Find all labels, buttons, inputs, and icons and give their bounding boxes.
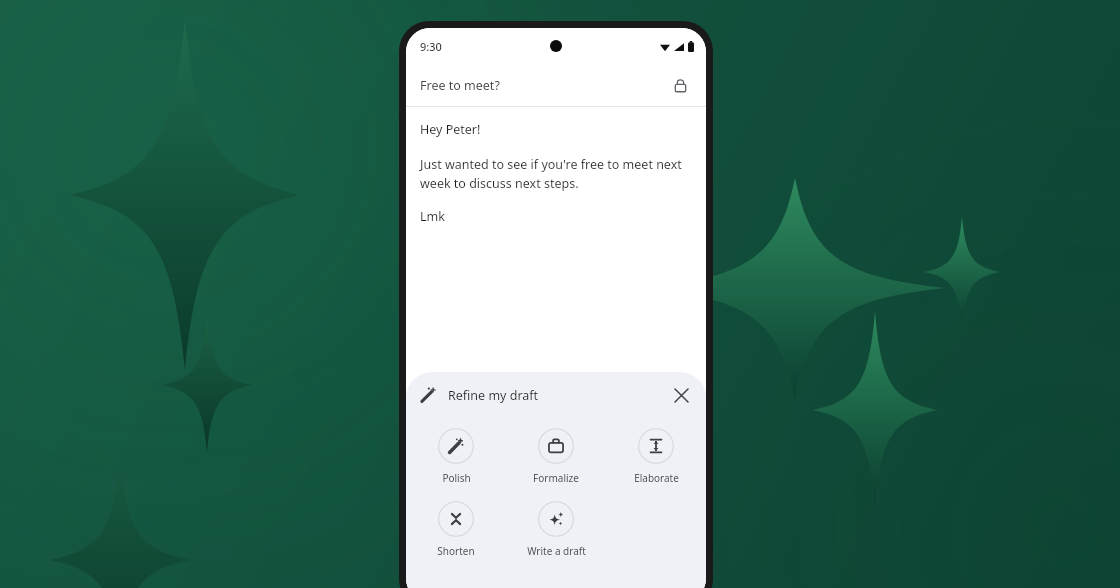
staticText: Shorten <box>437 544 475 558</box>
staticText: Polish <box>442 471 471 485</box>
staticText: Refine my draft <box>448 387 539 404</box>
button[interactable]: Polish <box>406 426 506 487</box>
button[interactable]: Close <box>666 380 696 410</box>
button[interactable]: Write a draft <box>506 499 606 560</box>
button[interactable]: Elaborate <box>606 426 706 487</box>
staticText: Just wanted to see if you're free to mee… <box>420 156 692 192</box>
button[interactable]: Free to meet? <box>406 64 706 106</box>
staticText: 9:30 <box>420 39 442 54</box>
button[interactable]: Shorten <box>406 499 506 560</box>
staticText: Elaborate <box>634 471 679 485</box>
staticText: Free to meet? <box>420 77 500 94</box>
button[interactable]: Formalize <box>506 426 606 487</box>
staticText: Hey Peter! <box>420 121 481 138</box>
staticText: Formalize <box>533 471 579 485</box>
button[interactable]: Confidential mode <box>668 73 692 97</box>
staticText: Write a draft <box>527 544 586 558</box>
staticText: Lmk <box>420 208 445 225</box>
